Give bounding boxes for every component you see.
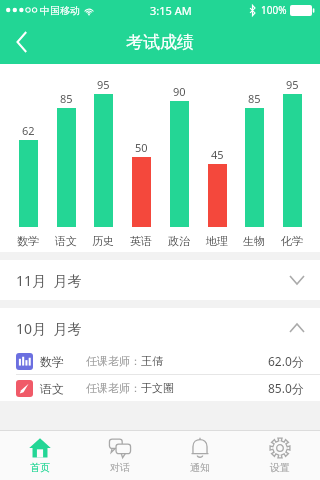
button[interactable]: 11月 月考: [0, 260, 320, 300]
staticText: 85: [248, 91, 261, 106]
staticText: 95: [286, 77, 299, 92]
staticText: 50: [135, 140, 148, 155]
button[interactable]: 首页: [0, 431, 80, 480]
staticText: 100%: [261, 3, 287, 17]
staticText: 数学: [17, 234, 39, 248]
staticText: 62.0分: [268, 353, 304, 369]
staticText: 11月 月考: [16, 271, 82, 290]
button[interactable]: 通知: [160, 431, 240, 480]
staticText: 中国移动: [40, 4, 80, 17]
button[interactable]: 10月 月考: [0, 308, 320, 348]
button[interactable]: Back: [0, 20, 44, 64]
staticText: 考试成绩: [126, 32, 194, 53]
staticText: 生物: [243, 234, 265, 248]
staticText: 85: [60, 91, 73, 106]
staticText: 设置: [270, 461, 290, 474]
staticText: 通知: [190, 461, 210, 474]
button[interactable]: 对话: [80, 431, 160, 480]
staticText: 45: [211, 147, 224, 162]
button[interactable]: 数学: [0, 348, 320, 374]
staticText: 英语: [130, 234, 152, 248]
button[interactable]: 语文: [0, 375, 320, 401]
staticText: 95: [97, 77, 110, 92]
staticText: 10月 月考: [16, 319, 82, 338]
staticText: 3:15 AM: [150, 3, 192, 18]
staticText: 任课老师：: [86, 381, 141, 395]
staticText: 历史: [92, 234, 114, 248]
staticText: 85.0分: [268, 380, 304, 396]
staticText: 政治: [168, 234, 190, 248]
staticText: 90: [173, 84, 186, 99]
staticText: 王倩: [141, 354, 163, 368]
staticText: 任课老师：: [86, 354, 141, 368]
button[interactable]: 设置: [240, 431, 320, 480]
staticText: 于文圈: [141, 381, 174, 395]
staticText: 语文: [40, 381, 64, 396]
staticText: 62: [22, 123, 35, 138]
staticText: 数学: [40, 354, 64, 369]
staticText: 化学: [281, 234, 303, 248]
staticText: 对话: [110, 461, 130, 474]
staticText: 语文: [55, 234, 77, 248]
staticText: 地理: [206, 234, 228, 248]
staticText: 首页: [30, 461, 50, 474]
